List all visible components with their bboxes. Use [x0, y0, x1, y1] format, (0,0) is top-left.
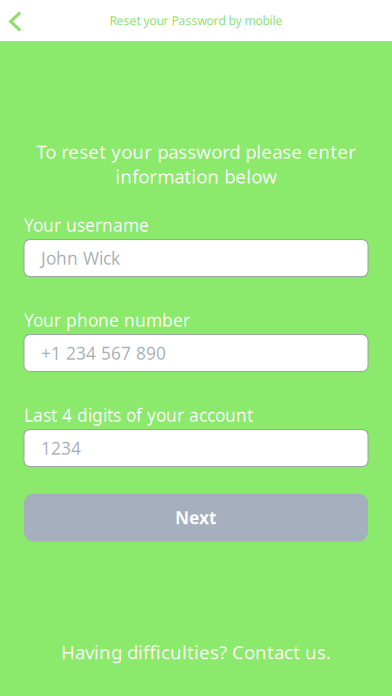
button[interactable]: Having difficulties? Contact us. — [61, 642, 331, 662]
staticText: 1234 — [41, 437, 81, 460]
staticText: John Wick — [41, 247, 120, 270]
button[interactable]: +1 234 567 890 — [24, 335, 368, 372]
staticText: To reset your password please enter info… — [36, 139, 356, 189]
staticText: Having difficulties? Contact us. — [61, 640, 331, 664]
button[interactable]: Back — [0, 0, 32, 41]
staticText: Reset your Password by mobile — [109, 12, 282, 28]
staticText: Last 4 digits of your account — [24, 404, 253, 427]
staticText: +1 234 567 890 — [41, 342, 166, 365]
button[interactable]: Next — [24, 494, 368, 542]
button[interactable]: 1234 — [24, 430, 368, 467]
staticText: Your username — [24, 214, 149, 237]
staticText: Next — [175, 506, 217, 529]
staticText: Your phone number — [24, 309, 190, 332]
button[interactable]: John Wick — [24, 240, 368, 277]
